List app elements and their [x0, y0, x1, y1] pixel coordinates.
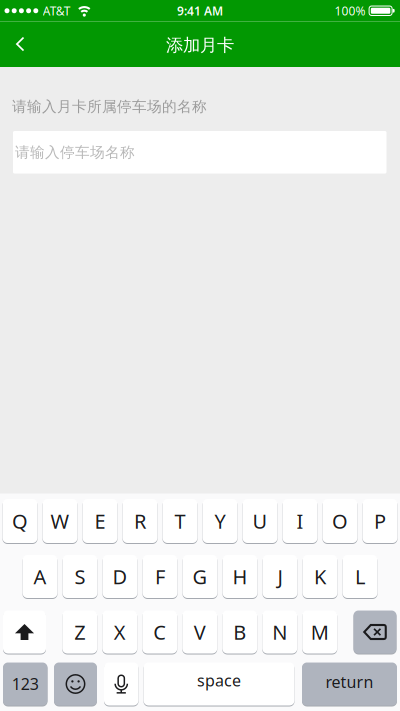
button[interactable]: E	[82, 498, 117, 543]
staticText: Z	[74, 619, 85, 645]
staticText: V	[194, 619, 206, 645]
button[interactable]: K	[302, 554, 337, 598]
button[interactable]: W	[42, 498, 77, 543]
button[interactable]: S	[62, 554, 97, 598]
staticText: 请输入停车场名称	[15, 143, 135, 161]
button[interactable]: T	[162, 498, 197, 543]
staticText: E	[94, 508, 105, 534]
staticText: S	[74, 563, 85, 590]
staticText: A	[33, 563, 46, 590]
button[interactable]: Delete	[353, 610, 396, 654]
button[interactable]: V	[182, 610, 217, 654]
button[interactable]: D	[102, 554, 137, 598]
button[interactable]: Z	[62, 610, 97, 654]
staticText: Q	[12, 508, 28, 534]
staticText: space	[197, 670, 241, 691]
button[interactable]: J	[262, 554, 297, 598]
button[interactable]: U	[242, 498, 277, 543]
button[interactable]: Emoji	[54, 662, 97, 706]
button[interactable]	[302, 662, 397, 706]
button[interactable]: R	[122, 498, 157, 543]
button[interactable]: N	[262, 610, 297, 654]
button[interactable]: X	[102, 610, 137, 654]
button[interactable]: P	[362, 498, 397, 543]
button[interactable]: Shift	[3, 610, 46, 654]
staticText: I	[296, 508, 303, 534]
button[interactable]: Q	[2, 498, 37, 543]
button[interactable]: O	[322, 498, 357, 543]
staticText: Y	[214, 508, 225, 534]
button[interactable]: C	[142, 610, 177, 654]
button[interactable]: B	[222, 610, 257, 654]
button[interactable]: Dictate	[104, 662, 138, 706]
staticText: K	[314, 563, 326, 590]
staticText: 9:41 AM	[177, 3, 223, 19]
staticText: AT&T	[43, 3, 71, 19]
staticText: M	[311, 619, 329, 645]
staticText: N	[272, 619, 287, 645]
staticText: D	[112, 563, 127, 590]
staticText: P	[374, 508, 386, 534]
button[interactable]: A	[22, 554, 57, 598]
button[interactable]: G	[182, 554, 217, 598]
staticText: X	[114, 619, 126, 645]
button[interactable]: M	[302, 610, 337, 654]
button[interactable]: 停车场名称输入框	[13, 131, 386, 173]
button[interactable]: F	[142, 554, 177, 598]
staticText: O	[332, 508, 348, 534]
staticText: J	[277, 563, 282, 590]
staticText: R	[134, 508, 146, 534]
staticText: 123	[12, 673, 39, 694]
staticText: 请输入月卡所属停车场的名称	[12, 97, 207, 115]
staticText: F	[155, 563, 165, 590]
button[interactable]: L	[342, 554, 377, 598]
staticText: W	[50, 508, 69, 534]
staticText: C	[153, 619, 166, 645]
staticText: 添加月卡	[166, 35, 234, 56]
staticText: B	[233, 619, 246, 645]
staticText: H	[232, 563, 247, 590]
button[interactable]	[143, 662, 294, 706]
button[interactable]: Back	[0, 21, 37, 67]
staticText: U	[252, 508, 267, 534]
button[interactable]	[3, 662, 47, 706]
staticText: 100%	[335, 3, 366, 19]
button[interactable]: Y	[202, 498, 237, 543]
button[interactable]: H	[222, 554, 257, 598]
staticText: return	[325, 671, 373, 692]
staticText: L	[355, 563, 365, 590]
staticText: T	[174, 508, 185, 534]
staticText: G	[192, 563, 207, 590]
button[interactable]: I	[282, 498, 317, 543]
